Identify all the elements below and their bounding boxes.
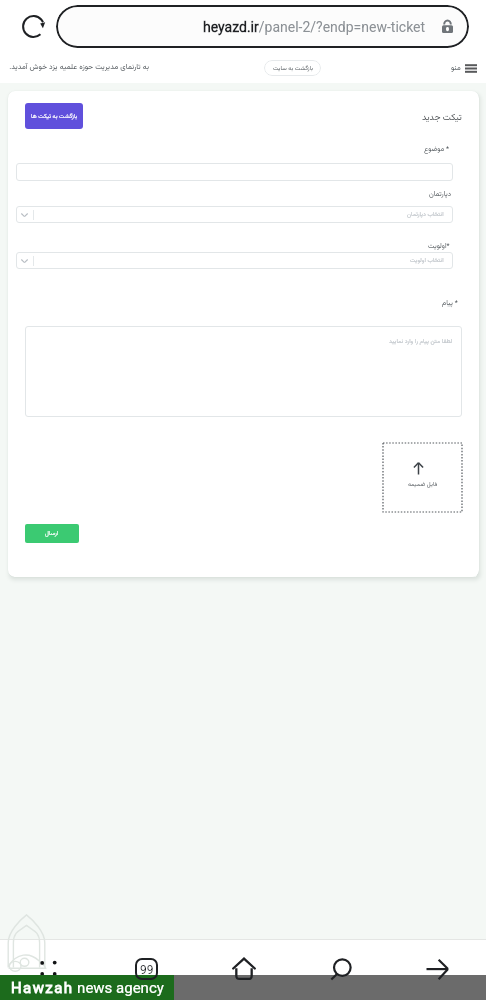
staticText: انتخاب دپارتمان — [407, 210, 444, 219]
button[interactable]: بازگشت به تیکت ها — [25, 103, 83, 129]
staticText: فایل ضمیمه — [408, 480, 438, 489]
staticText: لطفا متن پیام را وارد نمایید — [389, 337, 453, 346]
staticText: Hawzah news agency — [11, 979, 164, 997]
staticText: 99 — [140, 963, 154, 977]
button[interactable]: Forward — [426, 959, 449, 980]
staticText: انتخاب اولویت — [410, 256, 444, 265]
staticText: بازگشت به تیکت ها — [31, 112, 78, 121]
button[interactable]: heyazd.ir/panel-2/?endp=new-ticket — [56, 5, 469, 48]
staticText: ارسال — [45, 529, 59, 538]
button[interactable]: Tabs — [135, 958, 158, 980]
staticText: بازگشت به سایت — [273, 64, 313, 73]
staticText: تیکت جدید — [422, 111, 462, 125]
staticText: اولویت* — [428, 241, 450, 252]
button[interactable]: بازگشت به سایت — [264, 60, 321, 76]
button[interactable]: انتخاب اولویت — [16, 252, 453, 269]
staticText: منو — [451, 62, 461, 74]
button[interactable]: لطفا متن پیام را وارد نمایید — [25, 326, 462, 417]
staticText: موضوع * — [424, 144, 450, 155]
button[interactable] — [16, 163, 453, 181]
button[interactable]: Home — [232, 957, 256, 980]
staticText: heyazd.ir/panel-2/?endp=new-ticket — [203, 19, 426, 35]
staticText: به تارنمای مدیریت حوزه علمیه یزد خوش آمد… — [9, 61, 149, 73]
staticText: دپارتمان — [429, 189, 452, 200]
button[interactable]: Menu — [451, 57, 477, 79]
staticText: پیام * — [442, 298, 458, 309]
button[interactable]: Search — [330, 958, 352, 980]
button[interactable]: انتخاب دپارتمان — [16, 206, 453, 223]
button[interactable]: Attach file — [383, 443, 462, 512]
button[interactable]: ارسال — [25, 524, 79, 543]
button[interactable]: Reload — [21, 14, 46, 39]
